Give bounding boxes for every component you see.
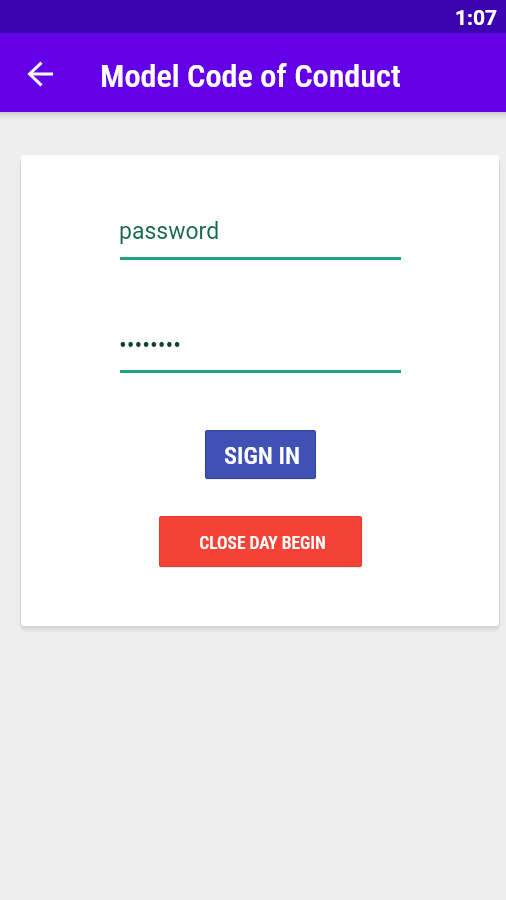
button[interactable]: CLOSE DAY BEGIN [159, 516, 362, 567]
button[interactable]: password [120, 210, 401, 260]
button[interactable]: Back [16, 49, 64, 97]
button[interactable]: •••••••• [120, 323, 401, 373]
staticText: 1:07 [455, 6, 498, 31]
staticText: CLOSE DAY BEGIN [199, 533, 326, 554]
staticText: Model Code of Conduct [100, 57, 401, 95]
staticText: password [119, 218, 220, 245]
staticText: SIGN IN [224, 441, 301, 470]
button[interactable]: SIGN IN [205, 430, 316, 479]
staticText: •••••••• [119, 332, 182, 359]
